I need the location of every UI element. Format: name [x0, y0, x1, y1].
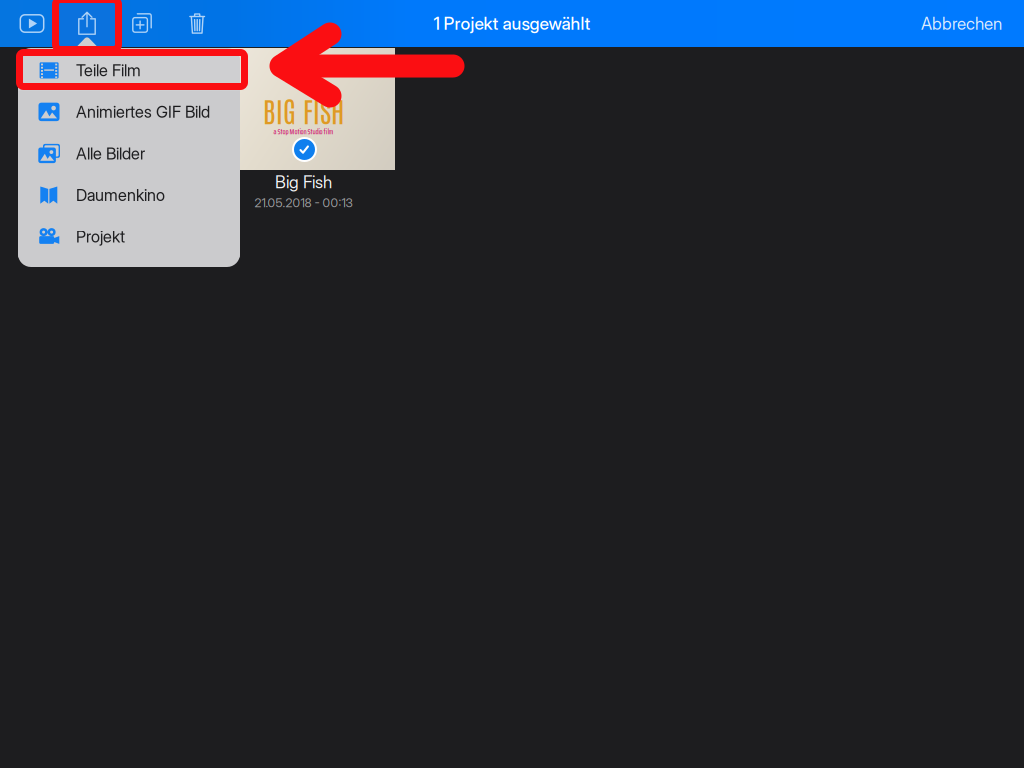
staticText: Alle Bilder — [76, 144, 145, 163]
button[interactable]: Löschen — [174, 0, 220, 47]
button[interactable]: Daumenkino — [18, 174, 240, 216]
button[interactable]: Abbrechen — [907, 0, 1016, 47]
staticText: Abbrechen — [921, 13, 1002, 34]
button[interactable]: Teile Film — [18, 49, 240, 91]
staticText: Daumenkino — [76, 185, 165, 205]
button[interactable]: Teilen — [54, 0, 120, 47]
button[interactable]: BIG FISH — [212, 48, 395, 213]
button[interactable]: Abspielen — [9, 0, 55, 47]
staticText: 21.05.2018 - 00:13 — [254, 195, 352, 210]
staticText: Projekt — [76, 227, 125, 247]
button[interactable]: Alle Bilder — [18, 133, 240, 174]
staticText: Teile Film — [76, 60, 141, 80]
button[interactable]: Duplizieren — [119, 0, 165, 47]
staticText: Animiertes GIF Bild — [76, 102, 210, 122]
button[interactable]: Projekt — [18, 216, 240, 257]
button[interactable]: Animiertes GIF Bild — [18, 91, 240, 133]
staticText: a Stop Motion Studio film — [273, 126, 333, 137]
staticText: 1 Projekt ausgewählt — [433, 13, 590, 34]
staticText: Big Fish — [275, 172, 332, 192]
staticText: BIG FISH — [263, 92, 344, 128]
